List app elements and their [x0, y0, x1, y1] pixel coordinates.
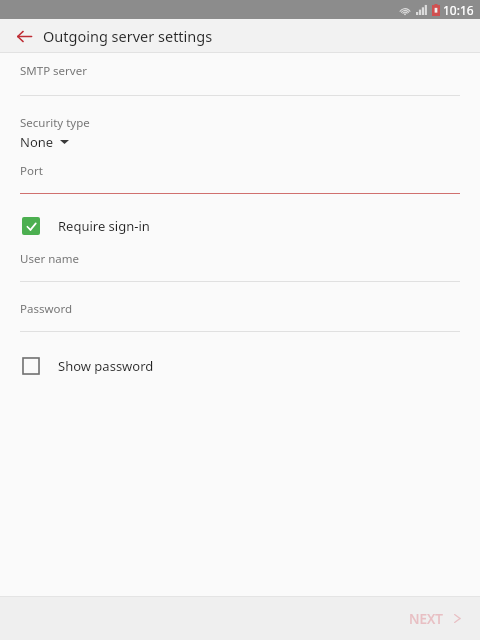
staticText: Require sign-in — [58, 217, 150, 235]
staticText: NEXT — [409, 610, 443, 628]
button[interactable]: NEXT — [391, 597, 480, 640]
staticText: User name — [20, 251, 79, 267]
staticText: Password — [20, 301, 73, 317]
button[interactable]: Show password — [0, 351, 480, 381]
button[interactable]: None — [20, 133, 69, 151]
button[interactable]: Require sign-in — [0, 211, 480, 241]
staticText: Show password — [58, 357, 154, 375]
staticText: None — [20, 133, 54, 151]
button[interactable]: Back — [10, 22, 38, 50]
staticText: Security type — [20, 115, 90, 131]
staticText: 10:16 — [443, 2, 474, 18]
staticText: Port — [20, 163, 43, 179]
staticText: SMTP server — [20, 63, 87, 79]
staticText: Outgoing server settings — [43, 26, 213, 46]
